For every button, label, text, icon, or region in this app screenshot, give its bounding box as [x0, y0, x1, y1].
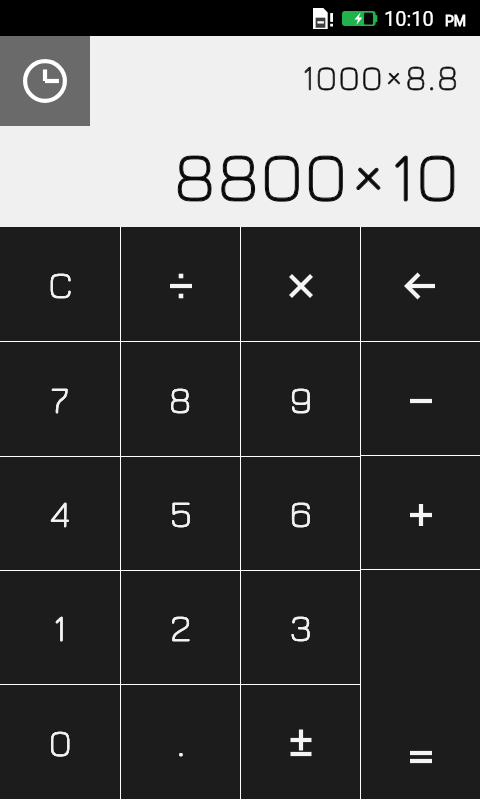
- staticText: 9: [290, 376, 312, 421]
- button[interactable]: Divide: [121, 227, 240, 341]
- staticText: 2: [170, 604, 192, 649]
- staticText: .: [177, 719, 185, 764]
- staticText: C: [48, 261, 73, 306]
- button[interactable]: Plus minus: [241, 685, 360, 799]
- button[interactable]: Multiply: [241, 227, 360, 341]
- button[interactable]: 0: [0, 685, 120, 799]
- staticText: 5: [170, 490, 192, 535]
- staticText: 7: [51, 376, 69, 421]
- staticText: 8: [169, 376, 192, 421]
- button[interactable]: Plus: [361, 456, 480, 569]
- staticText: 2: [170, 604, 192, 649]
- staticText: C: [48, 261, 73, 306]
- button[interactable]: 2: [121, 571, 240, 684]
- button[interactable]: 6: [241, 457, 360, 570]
- staticText: 8800×10: [174, 132, 461, 216]
- button[interactable]: Clear: [0, 227, 120, 341]
- staticText: 1: [53, 604, 67, 649]
- staticText: 8: [169, 376, 192, 421]
- staticText: 1000×8.8: [302, 56, 460, 98]
- staticText: 4: [50, 490, 70, 535]
- staticText: PM: [445, 13, 467, 29]
- button[interactable]: Backspace: [361, 227, 480, 341]
- button[interactable]: Decimal point: [121, 685, 240, 799]
- staticText: 8800×10: [174, 132, 461, 216]
- staticText: 3: [290, 604, 312, 649]
- staticText: 10:10: [384, 7, 434, 30]
- staticText: 4: [50, 490, 70, 535]
- button[interactable]: History: [0, 36, 90, 126]
- button[interactable]: 4: [0, 457, 120, 570]
- button[interactable]: 8: [121, 342, 240, 456]
- staticText: 0: [49, 719, 72, 764]
- button[interactable]: 5: [121, 457, 240, 570]
- button[interactable]: 3: [241, 571, 360, 684]
- button[interactable]: Minus: [361, 342, 480, 455]
- button[interactable]: 9: [241, 342, 360, 456]
- staticText: 6: [290, 490, 312, 535]
- staticText: 3: [290, 604, 312, 649]
- button[interactable]: Equals: [361, 570, 480, 799]
- staticText: 7: [51, 376, 69, 421]
- staticText: 1: [53, 604, 67, 649]
- staticText: .: [177, 719, 185, 764]
- staticText: 1000×8.8: [302, 56, 460, 98]
- staticText: 9: [290, 376, 312, 421]
- button[interactable]: 7: [0, 342, 120, 456]
- staticText: 0: [49, 719, 72, 764]
- button[interactable]: 1: [0, 571, 120, 684]
- staticText: 5: [170, 490, 192, 535]
- staticText: 6: [290, 490, 312, 535]
